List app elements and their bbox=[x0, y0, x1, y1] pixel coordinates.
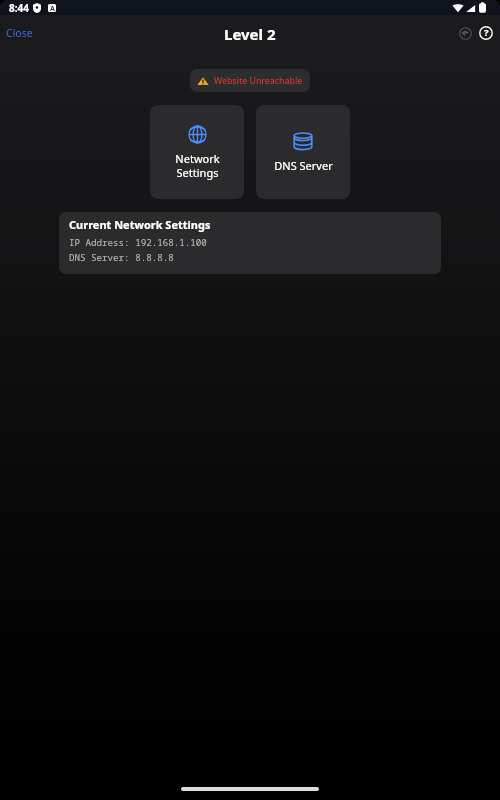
button[interactable]: Undo bbox=[457, 25, 473, 41]
staticText: 8:44 bbox=[9, 1, 29, 15]
staticText: IP Address: 192.168.1.100 bbox=[69, 236, 207, 249]
staticText: Website Unreachable bbox=[214, 75, 303, 87]
button[interactable]: Help bbox=[478, 25, 494, 41]
staticText: Level 2 bbox=[224, 24, 276, 41]
staticText: ? bbox=[484, 26, 489, 39]
staticText: Network Settings bbox=[175, 151, 220, 180]
button[interactable]: Current Network Settings bbox=[59, 212, 441, 274]
staticText: DNS Server bbox=[274, 158, 333, 173]
button[interactable]: Network Settings bbox=[150, 105, 244, 199]
button[interactable]: DNS Server bbox=[256, 105, 350, 199]
staticText: Current Network Settings bbox=[69, 217, 211, 232]
button[interactable]: Close bbox=[0, 24, 43, 41]
staticText: A bbox=[50, 4, 55, 12]
staticText: Close bbox=[6, 26, 33, 40]
staticText: DNS Server: 8.8.8.8 bbox=[69, 251, 174, 264]
button[interactable]: Website Unreachable bbox=[190, 69, 310, 92]
